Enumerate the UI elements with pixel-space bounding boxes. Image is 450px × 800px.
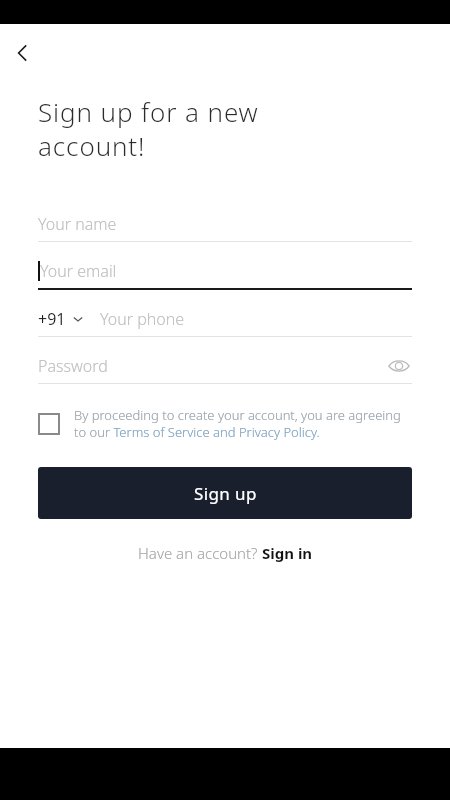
button[interactable]: By proceeding to create your account, yo… — [38, 406, 412, 441]
button[interactable]: Password — [38, 349, 412, 384]
button[interactable]: Your name — [38, 207, 412, 242]
button[interactable]: Show password — [386, 353, 412, 379]
staticText: Your phone — [100, 308, 185, 330]
staticText: Your email — [40, 260, 117, 282]
staticText: Sign in — [262, 543, 313, 563]
staticText: Have an account? — [138, 543, 262, 563]
staticText: Password — [38, 355, 386, 377]
button[interactable]: Your email — [38, 254, 412, 290]
staticText: Sign up for a new account! — [38, 94, 259, 163]
other: Select country code — [72, 313, 84, 325]
staticText: By proceeding to create your account, yo… — [74, 406, 412, 441]
button[interactable]: Back — [8, 38, 38, 68]
staticText: Sign up — [194, 482, 257, 505]
staticText: +91 — [38, 308, 66, 330]
button[interactable]: Sign in — [262, 543, 313, 563]
button[interactable]: Sign up — [38, 467, 412, 519]
staticText: Your name — [38, 213, 117, 235]
button[interactable]: +91 — [38, 302, 412, 337]
